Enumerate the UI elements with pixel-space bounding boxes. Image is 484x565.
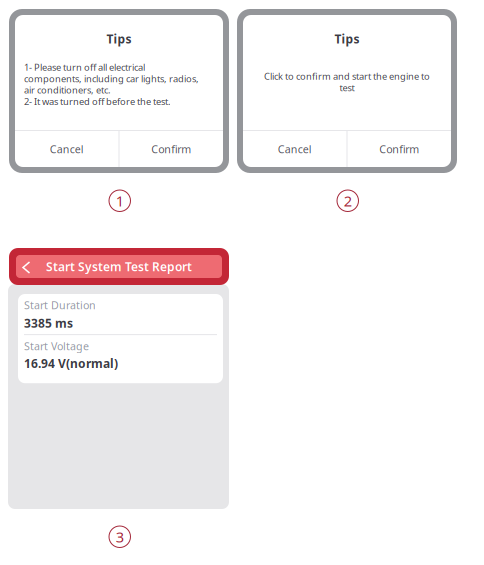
button[interactable]: Cancel (243, 131, 346, 167)
staticText: air conditioners, etc. (24, 84, 111, 96)
staticText: 2 (344, 191, 352, 210)
button[interactable]: Confirm (119, 131, 223, 167)
staticText: 1 (116, 191, 124, 210)
staticText: 1- Please turn off all electrical (24, 61, 145, 73)
staticText: Cancel (278, 142, 312, 156)
staticText: Start System Test Report (46, 258, 192, 274)
staticText: components, including car lights, radios… (24, 72, 199, 85)
staticText: Tips (106, 31, 131, 47)
staticText: 3 (116, 527, 124, 546)
staticText: Confirm (151, 142, 191, 156)
staticText: Tips (334, 31, 359, 47)
staticText: 16.94 V(normal) (24, 355, 118, 371)
staticText: Start Duration (24, 298, 96, 312)
staticText: 2- It was turned off before the test. (24, 95, 171, 107)
staticText: Cancel (50, 142, 84, 156)
button[interactable]: Confirm (347, 131, 451, 167)
button[interactable]: Back (16, 258, 33, 274)
staticText: 3385 ms (24, 315, 73, 331)
staticText: Click to confirm and start the engine to (264, 70, 430, 82)
staticText: test (339, 81, 354, 94)
staticText: Confirm (379, 142, 419, 156)
staticText: Start Voltage (24, 339, 89, 353)
button[interactable]: Cancel (15, 131, 118, 167)
